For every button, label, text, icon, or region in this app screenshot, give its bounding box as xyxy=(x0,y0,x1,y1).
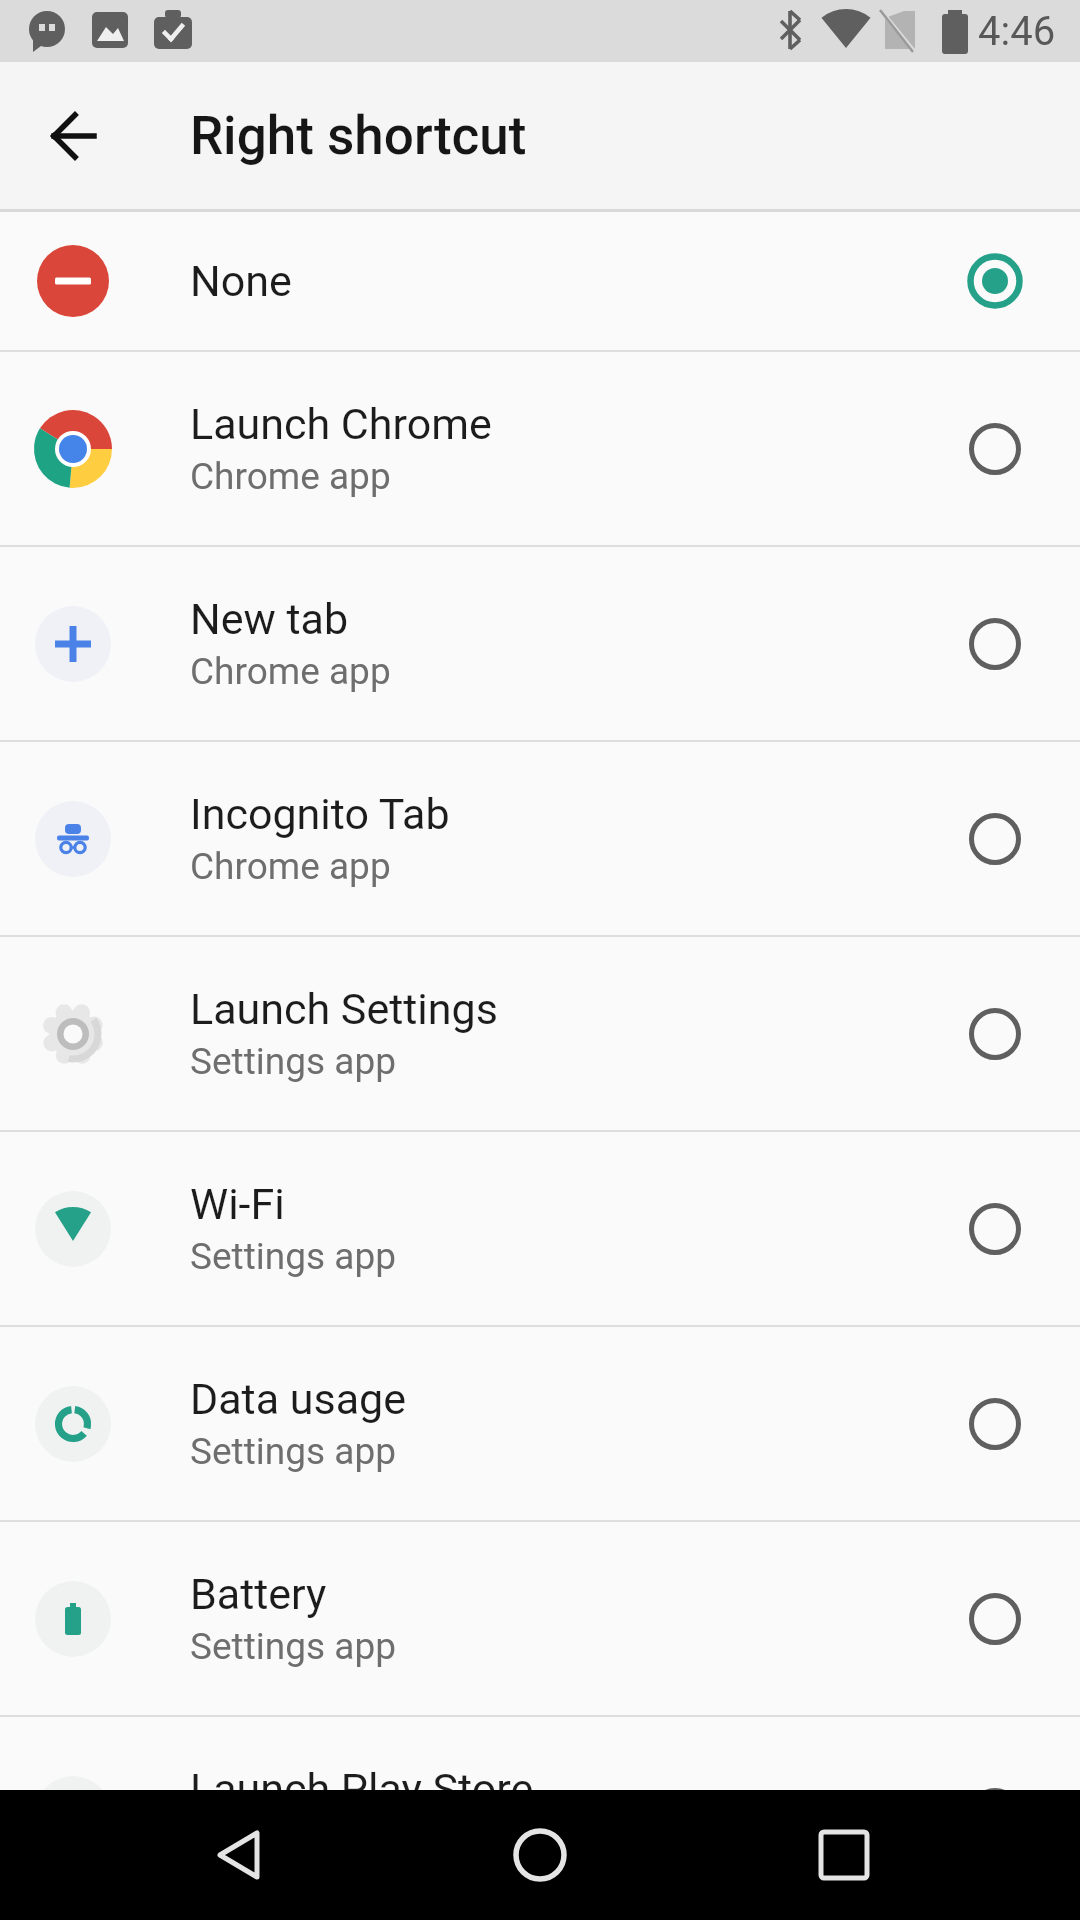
staticText: Settings app xyxy=(190,1625,396,1668)
button[interactable]: Launch Chrome xyxy=(0,352,1080,545)
staticText: Launch Settings xyxy=(190,984,498,1034)
staticText: Chrome app xyxy=(190,845,391,888)
staticText: Settings app xyxy=(190,1430,396,1473)
staticText: Settings app xyxy=(190,1040,396,1083)
button[interactable]: Wi-Fi xyxy=(0,1132,1080,1325)
button[interactable]: None xyxy=(0,212,1080,350)
button[interactable]: Launch Settings xyxy=(0,937,1080,1130)
button[interactable] xyxy=(488,1803,592,1907)
staticText: Chrome app xyxy=(190,650,391,693)
staticText: Launch Chrome xyxy=(190,399,492,449)
staticText: Settings app xyxy=(190,1235,396,1278)
staticText: Data usage xyxy=(190,1374,406,1424)
staticText: Battery xyxy=(190,1569,327,1619)
staticText: Play Store app xyxy=(190,1820,427,1863)
staticText: Incognito Tab xyxy=(190,789,450,839)
staticText: Wi-Fi xyxy=(190,1179,285,1229)
staticText: Launch Play Store xyxy=(190,1764,534,1814)
button[interactable]: Battery xyxy=(0,1522,1080,1715)
staticText: Chrome app xyxy=(190,455,391,498)
button[interactable]: Incognito Tab xyxy=(0,742,1080,935)
button[interactable] xyxy=(792,1803,896,1907)
button[interactable]: Launch Play Store xyxy=(0,1717,1080,1910)
staticText: None xyxy=(190,256,292,306)
button[interactable] xyxy=(186,1803,290,1907)
staticText: New tab xyxy=(190,594,349,644)
button[interactable]: Data usage xyxy=(0,1327,1080,1520)
staticText: 4:46 xyxy=(978,8,1056,55)
staticText: Right shortcut xyxy=(190,105,527,167)
button[interactable] xyxy=(38,100,110,172)
button[interactable]: New tab xyxy=(0,547,1080,740)
